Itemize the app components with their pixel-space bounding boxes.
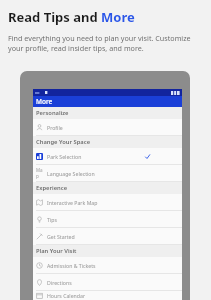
button[interactable]: Directions — [33, 274, 182, 291]
staticText: Change Your Space — [36, 138, 91, 146]
button[interactable]: Park Selection — [33, 148, 182, 165]
button[interactable]: Map — [33, 165, 182, 182]
staticText: Admission & Tickets — [47, 262, 96, 269]
button[interactable]: Hours Calendar — [33, 291, 182, 300]
button[interactable]: Get Started — [33, 228, 182, 245]
staticText: Map — [36, 167, 43, 179]
staticText: Read Tips and More — [8, 8, 135, 26]
staticText: Find everything you need to plan your vi… — [8, 33, 201, 53]
button[interactable]: Admission & Tickets — [33, 257, 182, 274]
staticText: Experience — [36, 184, 68, 192]
staticText: Directions — [47, 279, 72, 286]
button[interactable]: Interactive Park Map — [33, 194, 182, 211]
staticText: Hours Calendar — [47, 292, 86, 299]
staticText: Language Selection — [47, 170, 95, 177]
staticText: Plan Your Visit — [36, 247, 77, 255]
staticText: More — [36, 97, 53, 106]
button[interactable]: Profile — [33, 119, 182, 136]
staticText: Personalize — [36, 109, 69, 117]
staticText: Get Started — [47, 233, 75, 240]
staticText: Tips — [47, 216, 57, 223]
staticText: Interactive Park Map — [47, 199, 98, 206]
staticText: Profile — [47, 124, 63, 131]
staticText: Park Selection — [47, 153, 82, 160]
button[interactable]: Tips — [33, 211, 182, 228]
